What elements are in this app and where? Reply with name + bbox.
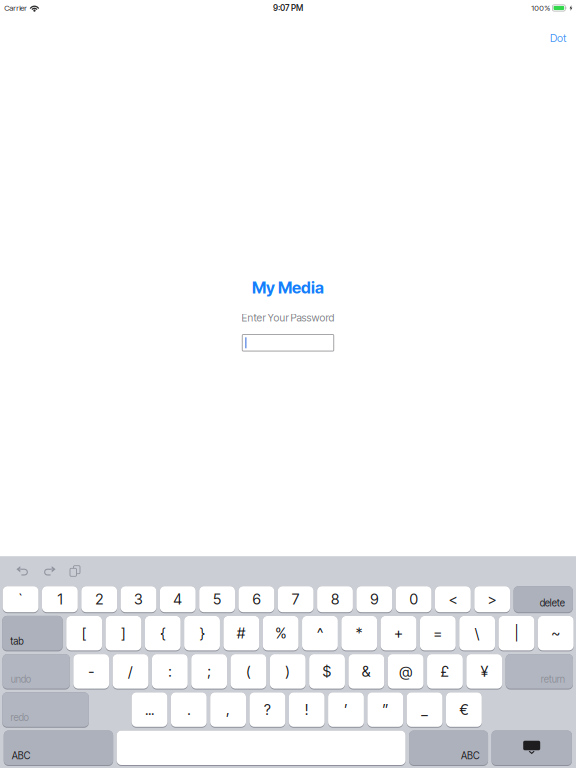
button[interactable]: 9	[356, 586, 392, 612]
staticText: (	[246, 662, 251, 680]
staticText: ^	[317, 624, 323, 642]
staticText: )	[285, 662, 290, 680]
button[interactable]: Redo	[36, 561, 63, 582]
staticText: >	[488, 590, 497, 608]
staticText: {	[160, 624, 165, 642]
staticText: undo	[11, 673, 31, 685]
button[interactable]: £	[427, 654, 463, 689]
staticText: ~	[551, 624, 560, 642]
staticText: Carrier	[4, 3, 27, 13]
staticText: 4	[173, 590, 182, 608]
staticText: .	[187, 701, 190, 718]
button[interactable]: ’	[328, 692, 364, 727]
staticText: £	[440, 662, 449, 680]
staticText: <	[448, 590, 457, 608]
button[interactable]: Undo	[9, 561, 36, 582]
staticText: 1	[57, 590, 62, 608]
staticText: 2	[95, 590, 103, 608]
button[interactable]: ]	[105, 616, 141, 650]
button[interactable]: tab	[2, 616, 63, 650]
staticText: }	[199, 624, 204, 642]
staticText: 7	[292, 590, 300, 608]
button[interactable]: 0	[396, 586, 431, 612]
button[interactable]: {	[145, 616, 181, 650]
button[interactable]: $	[309, 654, 345, 689]
button[interactable]: +	[381, 616, 416, 650]
button[interactable]: }	[184, 616, 220, 650]
staticText: ’	[344, 701, 348, 718]
staticText: 5	[213, 590, 221, 608]
button[interactable]: return	[506, 654, 573, 689]
button[interactable]: [	[66, 616, 102, 650]
staticText: ]	[121, 624, 126, 642]
staticText: :	[168, 662, 171, 680]
button[interactable]: `	[3, 586, 38, 612]
button[interactable]: 7	[278, 586, 314, 612]
button[interactable]: 4	[160, 586, 196, 612]
button[interactable]: |	[499, 616, 534, 650]
staticText: redo	[10, 712, 28, 723]
staticText: %	[275, 624, 286, 642]
button[interactable]: 1	[42, 586, 78, 612]
staticText: /	[128, 662, 133, 680]
button[interactable]: !	[289, 692, 325, 727]
button[interactable]: \	[459, 616, 495, 650]
button[interactable]: 2	[81, 586, 117, 612]
button[interactable]: <	[435, 586, 471, 612]
button[interactable]: (	[230, 654, 266, 689]
staticText: |	[514, 624, 518, 642]
button[interactable]: Dismiss Keyboard	[492, 730, 572, 765]
button[interactable]: ?	[249, 692, 285, 727]
button[interactable]: ;	[191, 654, 227, 689]
staticText: @	[399, 662, 412, 680]
button[interactable]: ^	[302, 616, 338, 650]
staticText: =	[433, 624, 442, 642]
staticText: _	[422, 701, 428, 718]
button[interactable]: 3	[121, 586, 156, 612]
button[interactable]	[117, 730, 406, 765]
button[interactable]: Paste	[63, 561, 88, 582]
staticText: Dot	[550, 31, 566, 45]
button[interactable]: -	[73, 654, 109, 689]
staticText: \	[475, 624, 480, 642]
staticText: return	[541, 673, 565, 685]
button[interactable]: ABC	[4, 730, 113, 765]
button[interactable]: )	[270, 654, 306, 689]
button[interactable]: ...	[132, 692, 167, 727]
button[interactable]: ABC	[409, 730, 488, 765]
button[interactable]: ~	[538, 616, 574, 650]
button[interactable]: redo	[2, 692, 89, 727]
button[interactable]: *	[341, 616, 377, 650]
staticText: #	[237, 624, 246, 642]
button[interactable]: ,	[210, 692, 246, 727]
button[interactable]: 8	[317, 586, 353, 612]
button[interactable]: /	[113, 654, 148, 689]
staticText: *	[356, 624, 363, 642]
button[interactable]: €	[446, 692, 482, 727]
button[interactable]: 6	[238, 586, 274, 612]
staticText: ;	[207, 662, 211, 680]
button[interactable]: Dot	[542, 26, 574, 50]
staticText: 8	[331, 590, 339, 608]
staticText: 3	[134, 590, 143, 608]
button[interactable]: @	[388, 654, 424, 689]
button[interactable]: delete	[514, 586, 573, 612]
staticText: tab	[10, 635, 23, 647]
staticText: My Media	[252, 278, 324, 297]
button[interactable]: >	[474, 586, 510, 612]
button[interactable]: &	[348, 654, 384, 689]
button[interactable]: undo	[2, 654, 70, 689]
button[interactable]: %	[263, 616, 299, 650]
staticText: Enter Your Password	[241, 311, 334, 324]
button[interactable]: .	[171, 692, 207, 727]
button[interactable]: :	[152, 654, 188, 689]
button[interactable]: ”	[367, 692, 403, 727]
button[interactable]: 5	[199, 586, 235, 612]
staticText: $	[322, 662, 331, 680]
button[interactable]: =	[420, 616, 456, 650]
button[interactable]: _	[407, 692, 442, 727]
staticText: +	[394, 624, 403, 642]
button[interactable]: ¥	[466, 654, 502, 689]
button[interactable]: #	[223, 616, 259, 650]
staticText: ?	[264, 701, 271, 718]
